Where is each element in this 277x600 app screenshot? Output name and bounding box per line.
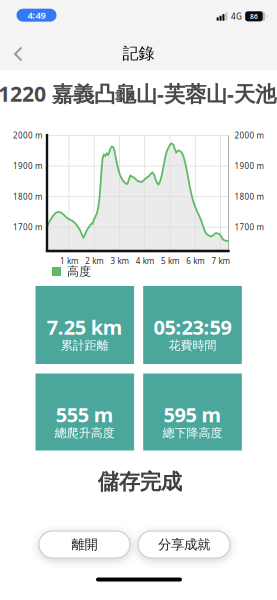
staticText: 05:23:59 <box>153 314 231 340</box>
staticText: 總下降高度 <box>162 426 222 440</box>
staticText: 分享成就 <box>158 536 210 553</box>
staticText: 86 <box>250 12 258 21</box>
staticText: 2 km <box>85 255 103 266</box>
staticText: 4G <box>231 11 242 22</box>
staticText: 5 km <box>161 255 179 266</box>
staticText: 1900 m <box>13 161 42 171</box>
staticText: 離開 <box>71 536 97 553</box>
staticText: 花費時間 <box>168 338 216 353</box>
staticText: 記錄 <box>122 44 154 63</box>
staticText: 1700 m <box>234 222 263 232</box>
staticText: 1800 m <box>13 191 42 202</box>
staticText: 6 km <box>186 255 204 266</box>
staticText: 7 km <box>211 255 229 266</box>
staticText: 1900 m <box>234 161 263 171</box>
staticText: 7.25 km <box>47 314 123 340</box>
staticText: 1800 m <box>234 191 263 202</box>
staticText: 1 km <box>60 255 78 266</box>
staticText: 高度 <box>67 264 91 279</box>
staticText: 3 km <box>110 255 128 266</box>
staticText: 595 m <box>163 401 221 428</box>
button[interactable]: Back <box>0 43 40 65</box>
staticText: 4 km <box>136 255 154 266</box>
staticText: 1700 m <box>13 222 42 232</box>
button[interactable]: 離開 <box>39 531 130 558</box>
staticText: 2000 m <box>234 130 263 141</box>
staticText: 總爬升高度 <box>55 426 115 440</box>
staticText: 4:49 <box>27 9 45 21</box>
staticText: 儲存完成 <box>98 469 182 495</box>
staticText: 555 m <box>56 401 114 428</box>
staticText: 1220 嘉義凸龜山-芙蓉山-天池山莊 <box>0 79 277 108</box>
staticText: 2000 m <box>13 130 42 141</box>
staticText: 累計距離 <box>61 338 109 353</box>
button[interactable]: 分享成就 <box>138 531 230 558</box>
